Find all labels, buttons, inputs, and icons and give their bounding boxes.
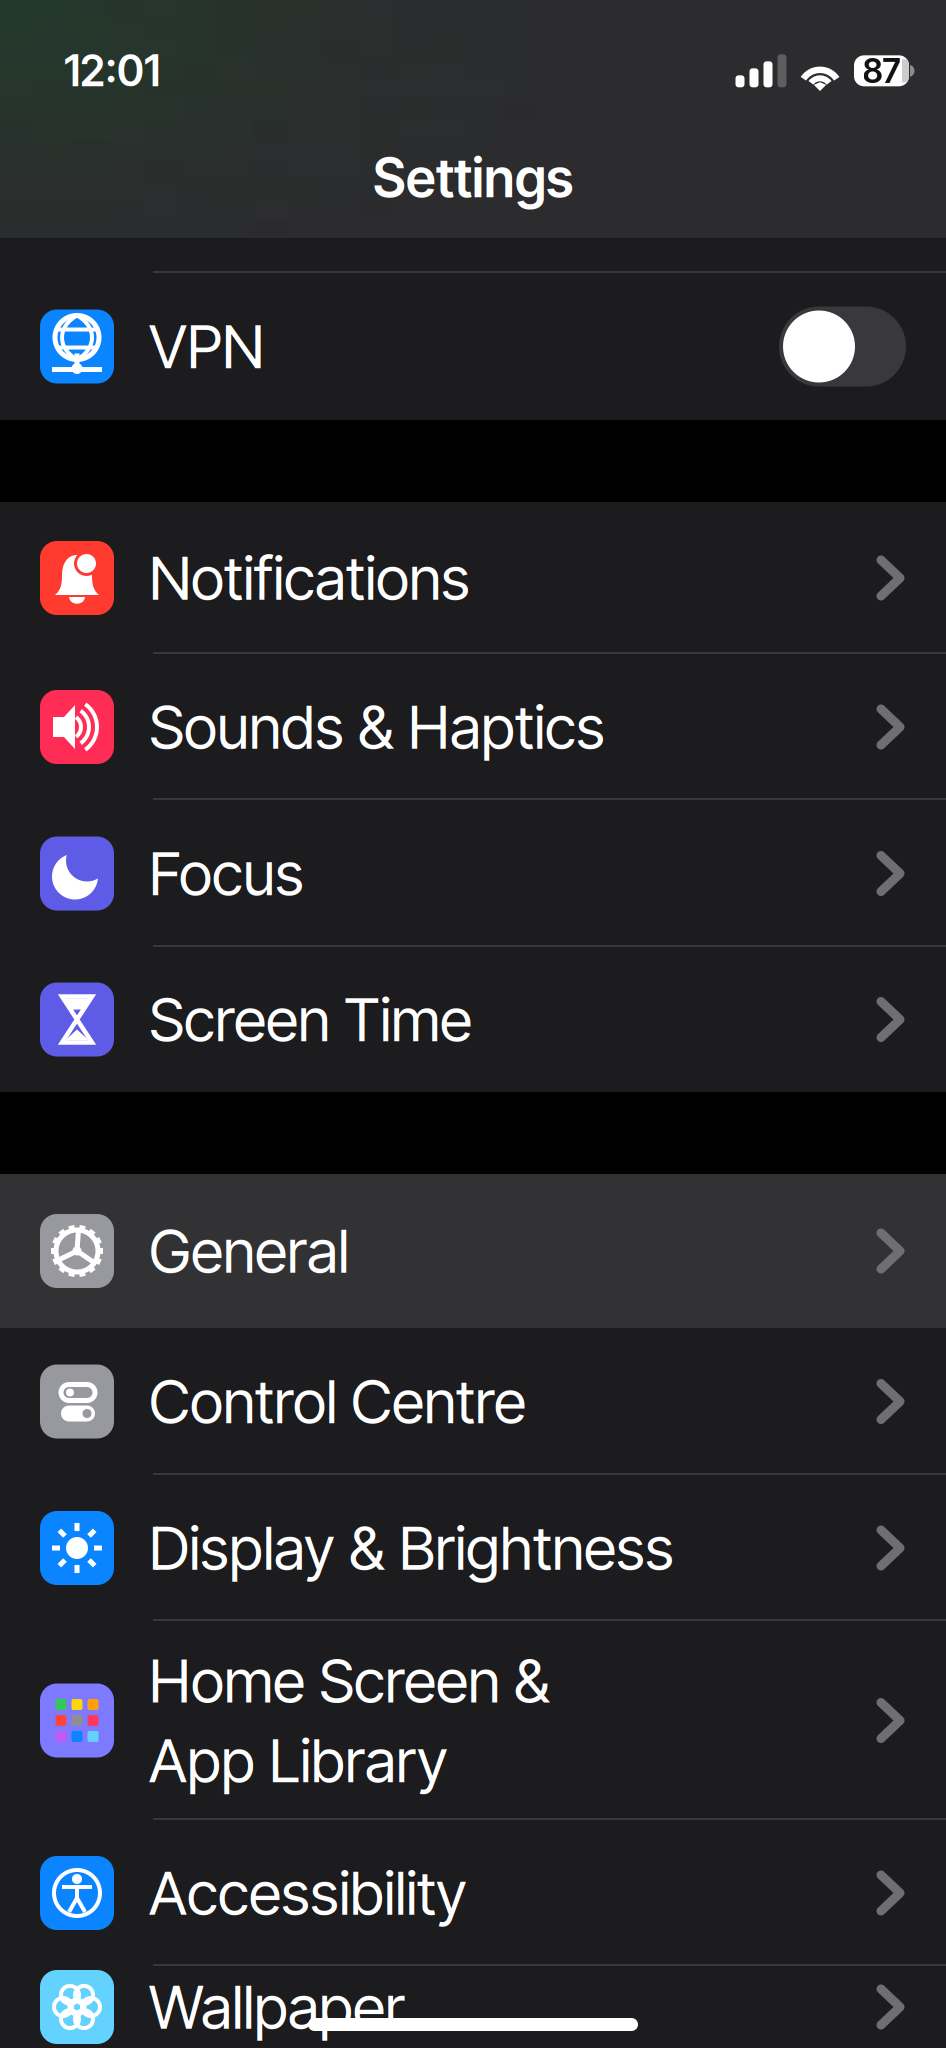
button[interactable]: General	[0, 1174, 946, 1328]
staticText: 87	[862, 51, 900, 91]
button[interactable]: Screen Time	[0, 947, 946, 1092]
staticText: Settings	[373, 145, 573, 210]
button[interactable]: VPN	[0, 273, 946, 420]
staticText: Screen Time	[149, 983, 472, 1056]
staticText: Home Screen &	[149, 1644, 550, 1717]
staticText: App Library	[149, 1724, 448, 1797]
button[interactable]: Home Screen & App Library	[0, 1621, 946, 1820]
button[interactable]: Display & Brightness	[0, 1475, 946, 1621]
staticText: General	[149, 1215, 349, 1287]
button[interactable]: Control Centre	[0, 1328, 946, 1475]
staticText: Sounds & Haptics	[149, 691, 605, 763]
staticText: Control Centre	[149, 1365, 526, 1438]
staticText: Focus	[149, 837, 304, 910]
button[interactable]: Accessibility	[0, 1820, 946, 1966]
staticText: Notifications	[149, 542, 470, 614]
button[interactable]: Wallpaper	[0, 1966, 946, 2048]
staticText: Wallpaper	[149, 1971, 405, 2043]
button[interactable]: Notifications	[0, 502, 946, 654]
button[interactable]: Sounds & Haptics	[0, 654, 946, 800]
staticText: 12:01	[64, 45, 160, 97]
staticText: Display & Brightness	[149, 1512, 674, 1584]
staticText: VPN	[149, 310, 264, 383]
staticText: Accessibility	[149, 1857, 467, 1929]
button[interactable]: Focus	[0, 800, 946, 947]
